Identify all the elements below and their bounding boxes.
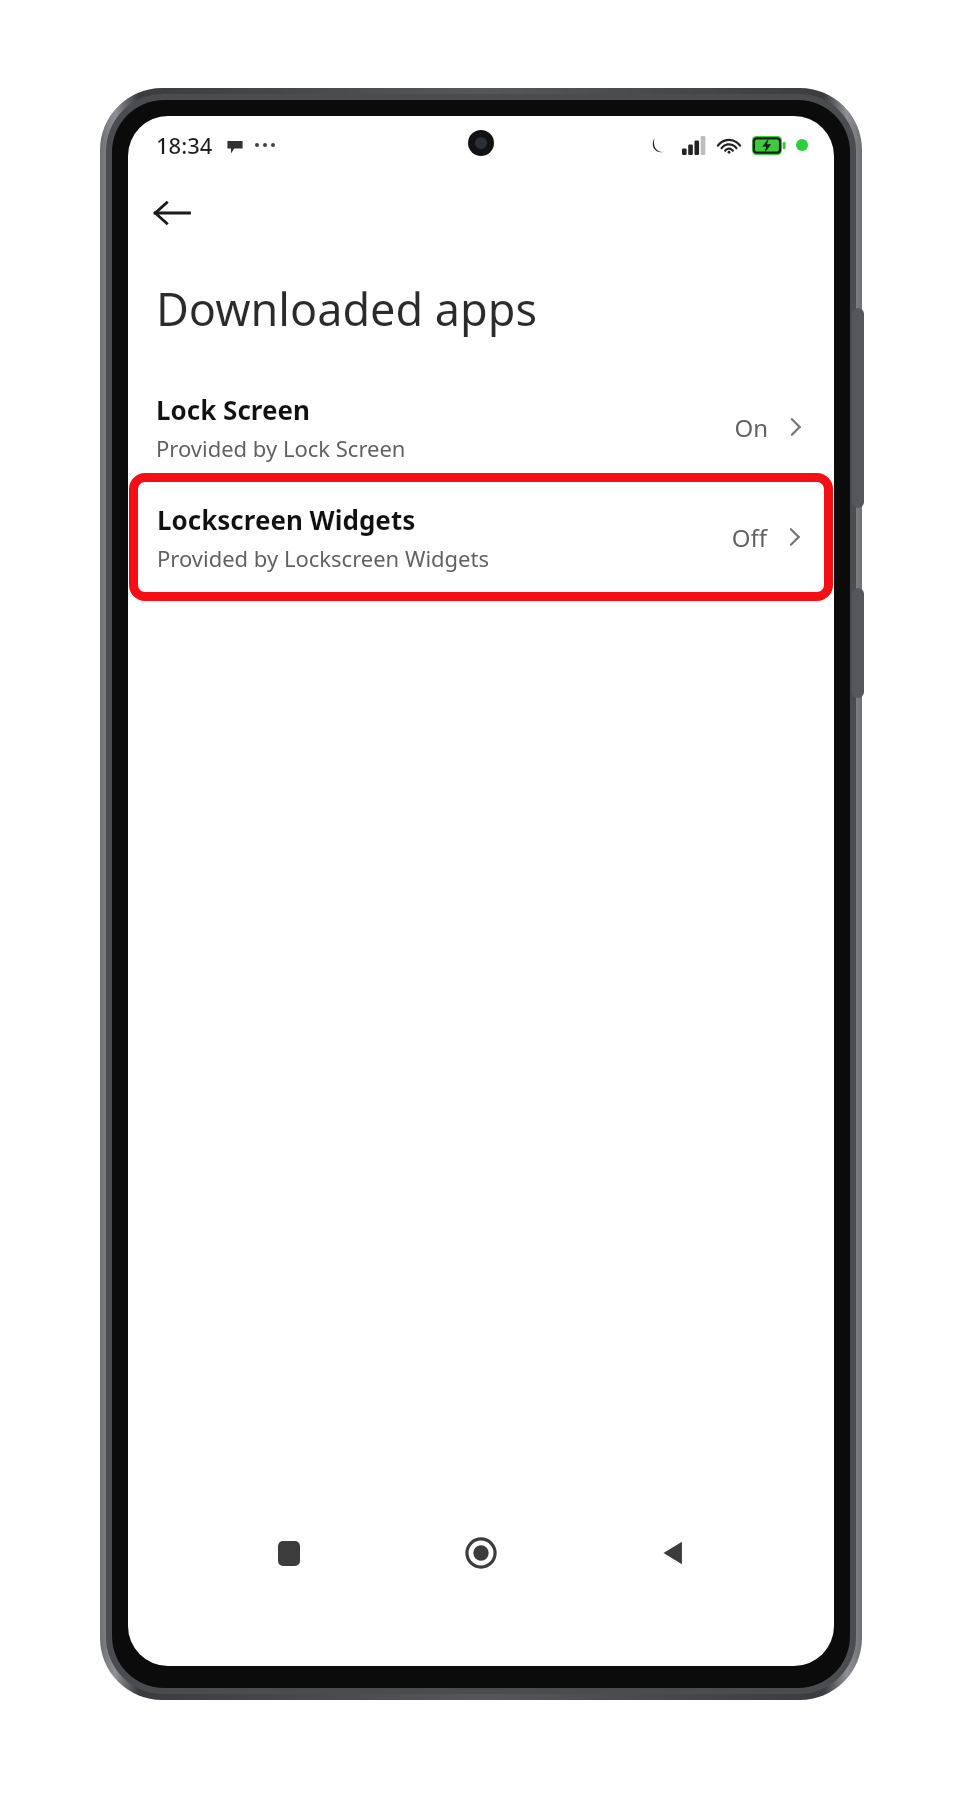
button[interactable]: Lock Screen: [128, 381, 834, 473]
staticText: Downloaded apps: [156, 278, 538, 339]
button[interactable]: Home: [450, 1522, 512, 1584]
staticText: 18:34: [156, 130, 213, 160]
staticText: On: [734, 411, 768, 444]
button[interactable]: Recent apps: [258, 1522, 320, 1584]
staticText: Off: [731, 521, 767, 554]
button[interactable]: Back: [144, 185, 200, 241]
staticText: Lock Screen: [156, 392, 310, 427]
button[interactable]: Back: [642, 1522, 704, 1584]
staticText: Provided by Lock Screen: [156, 433, 406, 463]
staticText: Lockscreen Widgets: [157, 502, 416, 537]
staticText: Provided by Lockscreen Widgets: [157, 543, 490, 573]
button[interactable]: Lockscreen Widgets: [129, 473, 833, 601]
